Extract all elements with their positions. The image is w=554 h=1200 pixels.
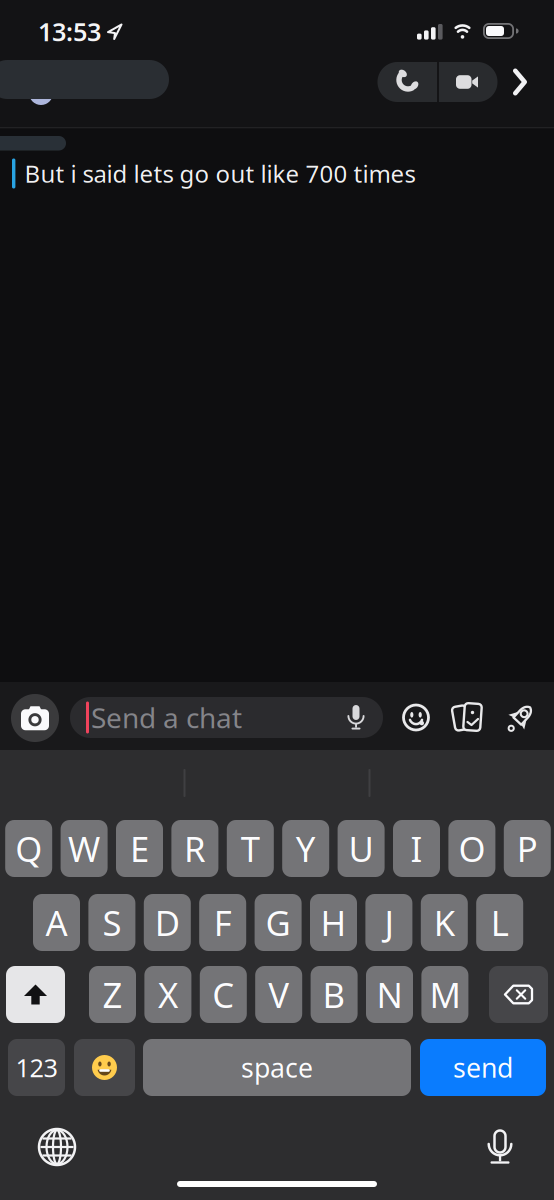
button[interactable]: F <box>199 894 246 951</box>
button[interactable]: P <box>504 820 551 877</box>
button[interactable]: J <box>365 894 412 951</box>
button[interactable]: G <box>255 894 302 951</box>
staticText: W <box>68 825 100 871</box>
staticText: P <box>517 825 538 871</box>
button[interactable]: Send a chat <box>70 697 383 738</box>
staticText: T <box>241 825 260 871</box>
button[interactable]: H <box>310 894 357 951</box>
button[interactable]: Stickers <box>402 703 430 731</box>
button[interactable]: Y <box>282 820 329 877</box>
staticText: space <box>241 1050 313 1085</box>
staticText: L <box>491 899 509 945</box>
button[interactable]: D <box>144 894 191 951</box>
staticText: send <box>453 1050 513 1085</box>
staticText: F <box>214 899 232 945</box>
staticText: Z <box>102 971 122 1017</box>
button[interactable]: W <box>61 820 108 877</box>
staticText: Y <box>296 825 316 871</box>
button[interactable]: Memories <box>452 702 484 732</box>
button[interactable]: Z <box>89 966 136 1023</box>
button[interactable]: K <box>421 894 468 951</box>
button[interactable]: S <box>88 894 135 951</box>
button[interactable]: Next keyboard <box>39 1129 75 1165</box>
staticText: C <box>212 971 234 1017</box>
button[interactable]: Q <box>5 820 52 877</box>
button[interactable]: E <box>116 820 163 877</box>
staticText: K <box>434 899 455 945</box>
button[interactable]: I <box>393 820 440 877</box>
button[interactable]: Video call <box>445 62 489 102</box>
staticText: X <box>158 971 178 1017</box>
staticText: I <box>410 825 422 871</box>
button[interactable]: V <box>255 966 302 1023</box>
staticText: V <box>268 971 289 1017</box>
staticText: J <box>384 899 393 945</box>
button[interactable]: Games <box>506 702 538 732</box>
button[interactable]: Dictation <box>488 1130 512 1165</box>
staticText: Q <box>15 825 42 871</box>
button[interactable]: T <box>227 820 274 877</box>
button[interactable]: A <box>33 894 80 951</box>
button[interactable]: Conversation <box>0 60 169 99</box>
staticText: D <box>155 899 180 945</box>
staticText: O <box>458 825 485 871</box>
button[interactable]: 123 <box>8 1039 65 1096</box>
button[interactable]: U <box>338 820 385 877</box>
button[interactable]: L <box>476 894 523 951</box>
staticText: R <box>184 825 206 871</box>
staticText: S <box>102 899 121 945</box>
button[interactable]: Camera <box>11 694 59 742</box>
button[interactable]: Voice call <box>385 62 429 102</box>
staticText: But i said lets go out like 700 times <box>24 158 415 189</box>
staticText: E <box>130 825 149 871</box>
staticText: U <box>349 825 374 871</box>
staticText: G <box>266 899 291 945</box>
staticText: H <box>320 899 346 945</box>
button[interactable]: M <box>421 966 468 1023</box>
staticText: 123 <box>15 1051 57 1084</box>
button[interactable]: Conversation details <box>508 65 532 99</box>
staticText: 13:53 <box>38 15 101 48</box>
staticText: Send a chat <box>91 699 242 736</box>
button[interactable]: X <box>144 966 191 1023</box>
button[interactable]: N <box>366 966 413 1023</box>
button[interactable]: Emoji <box>74 1039 135 1096</box>
button[interactable]: O <box>448 820 495 877</box>
button[interactable]: C <box>200 966 247 1023</box>
staticText: M <box>429 971 460 1017</box>
staticText: N <box>376 971 402 1017</box>
button[interactable]: Delete <box>489 966 548 1023</box>
button[interactable]: R <box>171 820 218 877</box>
staticText: A <box>45 899 67 945</box>
button[interactable]: B <box>311 966 358 1023</box>
button[interactable]: send <box>420 1039 546 1096</box>
button[interactable]: space <box>143 1039 411 1096</box>
button[interactable]: Shift <box>6 966 65 1023</box>
staticText: B <box>323 971 346 1017</box>
